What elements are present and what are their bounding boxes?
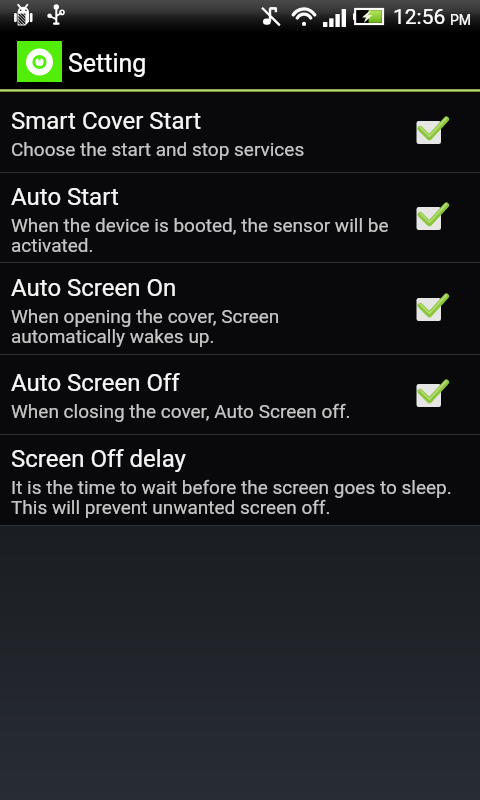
staticText: When closing the cover, Auto Screen off. [11, 402, 351, 422]
staticText: Screen Off delay [11, 445, 186, 473]
staticText: It is the time to wait before the screen… [11, 478, 469, 518]
staticText: Smart Cover Start [11, 107, 202, 135]
staticText: Setting [68, 49, 147, 78]
staticText: PM [450, 12, 472, 28]
button[interactable]: Auto Start [0, 173, 480, 262]
button[interactable]: Toggle setting [416, 117, 468, 147]
staticText: Auto Start [11, 183, 119, 211]
staticText: Auto Screen On [11, 274, 177, 302]
staticText: Auto Screen Off [11, 369, 180, 397]
button[interactable]: Toggle setting [416, 203, 468, 233]
button[interactable]: Toggle setting [416, 380, 468, 410]
staticText: When opening the cover, Screen automatic… [11, 307, 391, 347]
staticText: 12:56 [393, 5, 446, 30]
button[interactable]: Screen Off delay [0, 435, 480, 525]
button[interactable]: Auto Screen On [0, 263, 480, 354]
button[interactable]: Smart Cover Start [0, 92, 480, 172]
staticText: When the device is booted, the sensor wi… [11, 216, 391, 256]
button[interactable]: Auto Screen Off [0, 355, 480, 434]
staticText: Choose the start and stop services [11, 140, 305, 160]
button[interactable]: Toggle setting [416, 294, 468, 324]
